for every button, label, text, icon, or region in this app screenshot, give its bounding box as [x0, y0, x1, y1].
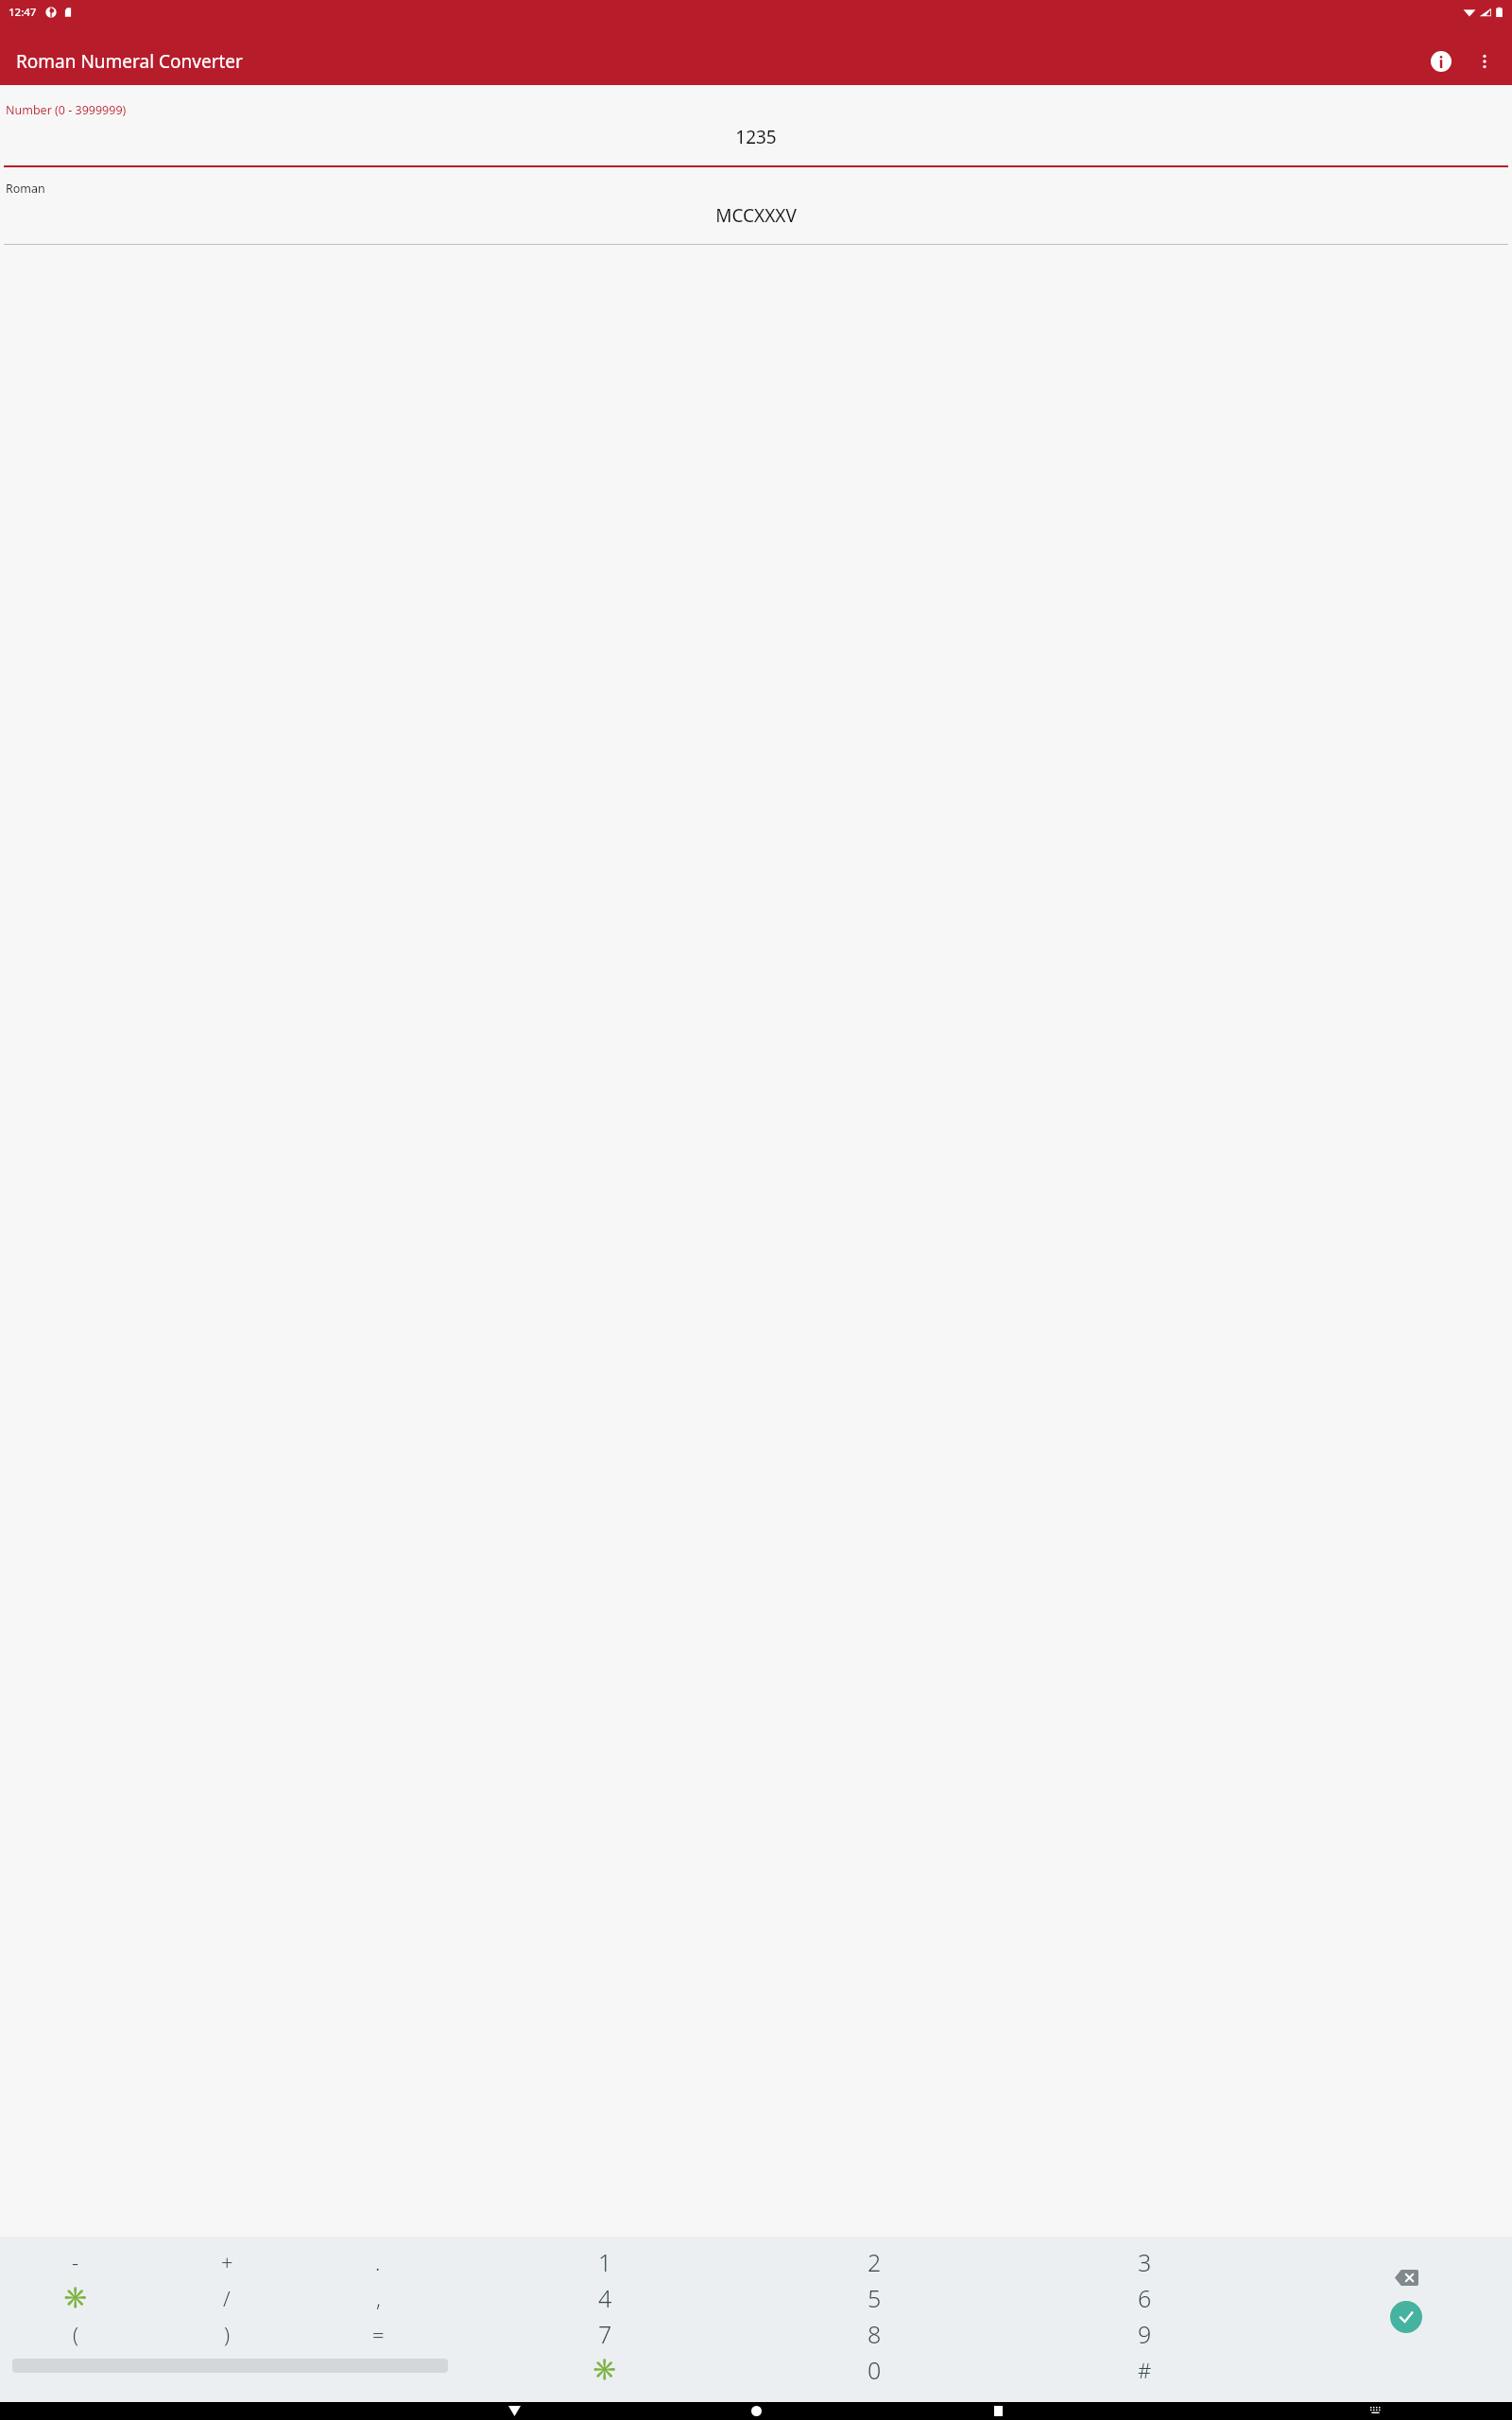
staticText: 1: [598, 2246, 612, 2278]
button[interactable]: +: [206, 2244, 248, 2280]
staticText: Roman Numeral Converter: [16, 49, 243, 74]
button[interactable]: =: [357, 2316, 399, 2352]
staticText: =: [372, 2320, 385, 2348]
staticText: /: [223, 2284, 231, 2312]
button[interactable]: Roman: [0, 181, 1512, 245]
staticText: -: [72, 2248, 79, 2276]
staticText: 9: [1138, 2318, 1152, 2350]
staticText: 4: [598, 2282, 612, 2314]
button[interactable]: 2: [853, 2244, 895, 2280]
staticText: Roman: [6, 181, 45, 197]
staticText: ): [224, 2320, 231, 2348]
staticText: (: [73, 2320, 79, 2348]
button[interactable]: ✳: [584, 2352, 626, 2388]
staticText: 1235: [4, 125, 1508, 149]
staticText: ,: [376, 2284, 381, 2312]
button[interactable]: -: [55, 2244, 96, 2280]
staticText: 2: [868, 2246, 882, 2278]
button[interactable]: (: [55, 2316, 96, 2352]
button[interactable]: Info: [1419, 40, 1463, 83]
staticText: MCCXXXV: [4, 203, 1508, 228]
staticText: .: [375, 2248, 381, 2276]
staticText: ✳: [592, 2358, 618, 2382]
button[interactable]: ✳: [55, 2280, 96, 2316]
button[interactable]: Done: [1384, 2295, 1428, 2339]
staticText: 3: [1138, 2246, 1152, 2278]
button[interactable]: 3: [1124, 2244, 1165, 2280]
button[interactable]: Recent apps: [980, 2402, 1016, 2420]
button[interactable]: #: [1124, 2352, 1165, 2388]
button[interactable]: Home: [738, 2402, 774, 2420]
button[interactable]: 6: [1124, 2280, 1165, 2316]
staticText: 12:47: [9, 5, 37, 20]
button[interactable]: 4: [584, 2280, 626, 2316]
button[interactable]: ): [206, 2316, 248, 2352]
staticText: 7: [598, 2318, 612, 2350]
button[interactable]: 5: [853, 2280, 895, 2316]
button[interactable]: 0: [853, 2352, 895, 2388]
staticText: +: [221, 2248, 233, 2276]
button[interactable]: Number (0 - 3999999): [0, 89, 1512, 167]
button[interactable]: ,: [357, 2280, 399, 2316]
staticText: 6: [1138, 2282, 1152, 2314]
button[interactable]: 9: [1124, 2316, 1165, 2352]
button[interactable]: /: [206, 2280, 248, 2316]
button[interactable]: 8: [853, 2316, 895, 2352]
button[interactable]: 1: [584, 2244, 626, 2280]
button[interactable]: More options: [1463, 40, 1506, 83]
staticText: Number (0 - 3999999): [6, 102, 127, 118]
staticText: 0: [868, 2354, 882, 2386]
button[interactable]: Switch keyboard: [1358, 2402, 1394, 2420]
staticText: 8: [868, 2318, 882, 2350]
button[interactable]: .: [357, 2244, 399, 2280]
button[interactable]: Back: [496, 2402, 532, 2420]
button[interactable]: 7: [584, 2316, 626, 2352]
staticText: ✳: [62, 2286, 89, 2310]
staticText: #: [1138, 2356, 1152, 2384]
staticText: 5: [868, 2282, 882, 2314]
button[interactable]: Backspace: [1384, 2256, 1428, 2299]
